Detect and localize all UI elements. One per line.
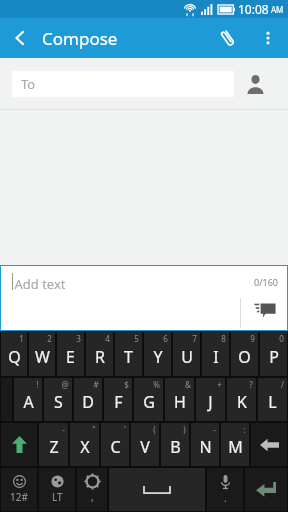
staticText: 9 bbox=[250, 333, 255, 344]
staticText: T bbox=[124, 346, 133, 368]
button[interactable]: 12# bbox=[1, 468, 37, 511]
button[interactable]: More options bbox=[248, 18, 288, 58]
button[interactable]: % bbox=[134, 378, 163, 421]
staticText: ? bbox=[249, 379, 253, 390]
staticText: 0/160 bbox=[254, 276, 278, 288]
staticText: 0 bbox=[279, 333, 284, 344]
button[interactable]: Send bbox=[243, 286, 287, 330]
staticText: E bbox=[66, 346, 75, 368]
staticText: ! bbox=[36, 379, 39, 390]
staticText: - bbox=[213, 424, 216, 435]
button[interactable]: ' bbox=[101, 423, 129, 466]
staticText: D bbox=[82, 391, 94, 413]
button[interactable]: ) bbox=[161, 423, 189, 466]
button[interactable]: Attach bbox=[208, 18, 248, 58]
staticText: ) bbox=[183, 424, 186, 435]
staticText: + bbox=[217, 379, 222, 390]
button[interactable]: - bbox=[191, 423, 219, 466]
staticText: W bbox=[35, 346, 50, 368]
button[interactable]: / bbox=[258, 378, 287, 421]
staticText: : bbox=[243, 424, 246, 435]
staticText: 6 bbox=[163, 333, 168, 344]
button[interactable]: 9 bbox=[231, 332, 258, 376]
button[interactable]: To bbox=[12, 71, 234, 97]
staticText: ( bbox=[153, 424, 156, 435]
staticText: / bbox=[281, 379, 284, 390]
staticText: L bbox=[268, 391, 277, 413]
staticText: 8 bbox=[221, 333, 226, 344]
button[interactable]: 5 bbox=[115, 332, 142, 376]
button[interactable]: Add text bbox=[1, 266, 287, 330]
button[interactable]: 1 bbox=[1, 332, 27, 376]
staticText: R bbox=[95, 346, 105, 368]
staticText: To bbox=[21, 75, 36, 93]
button[interactable]: Enter bbox=[245, 468, 287, 511]
button[interactable]: : bbox=[221, 423, 249, 466]
staticText: G bbox=[143, 391, 155, 413]
button[interactable]: # bbox=[74, 378, 102, 421]
staticText: % bbox=[153, 379, 160, 390]
staticText: - bbox=[62, 424, 65, 435]
staticText: . bbox=[224, 491, 227, 505]
staticText: P bbox=[269, 346, 279, 368]
button[interactable]: & bbox=[165, 378, 194, 421]
staticText: # bbox=[93, 379, 99, 390]
button[interactable]: 6 bbox=[144, 332, 171, 376]
button[interactable]: - bbox=[39, 423, 68, 466]
button[interactable]: Backspace bbox=[251, 423, 287, 466]
staticText: Y bbox=[153, 346, 163, 368]
staticText: V bbox=[140, 436, 150, 458]
staticText: M bbox=[228, 436, 243, 458]
button[interactable]: 8 bbox=[202, 332, 229, 376]
staticText: A bbox=[23, 391, 34, 413]
button[interactable]: LT bbox=[39, 468, 75, 511]
staticText: AM bbox=[271, 4, 284, 15]
staticText: LT bbox=[52, 490, 63, 504]
button[interactable]: , bbox=[77, 468, 107, 511]
button[interactable]: $ bbox=[104, 378, 132, 421]
staticText: O bbox=[238, 346, 251, 368]
button[interactable]: . bbox=[207, 468, 243, 511]
button[interactable]: Back bbox=[0, 18, 40, 58]
staticText: $ bbox=[124, 379, 129, 390]
staticText: F bbox=[114, 391, 123, 413]
staticText: X bbox=[80, 436, 90, 458]
staticText: 4 bbox=[105, 333, 110, 344]
staticText: " bbox=[92, 424, 96, 435]
staticText: H bbox=[174, 391, 186, 413]
staticText: N bbox=[199, 436, 212, 458]
staticText: 10:08 bbox=[238, 1, 269, 17]
staticText: ' bbox=[124, 424, 126, 435]
button[interactable]: 4 bbox=[86, 332, 113, 376]
button[interactable]: 7 bbox=[173, 332, 200, 376]
staticText: J bbox=[208, 391, 213, 413]
staticText: I bbox=[213, 346, 219, 368]
staticText: 5 bbox=[134, 333, 139, 344]
staticText: @ bbox=[61, 379, 69, 390]
staticText: Z bbox=[49, 436, 59, 458]
button[interactable]: @ bbox=[44, 378, 72, 421]
staticText: S bbox=[54, 391, 63, 413]
staticText: Add text bbox=[14, 275, 66, 293]
staticText: 1 bbox=[19, 333, 24, 344]
button[interactable]: ! bbox=[14, 378, 42, 421]
button[interactable]: Pick contact bbox=[234, 64, 276, 104]
staticText: U bbox=[181, 346, 193, 368]
button[interactable]: " bbox=[70, 423, 99, 466]
button[interactable]: 2 bbox=[29, 332, 55, 376]
staticText: C bbox=[110, 436, 121, 458]
button[interactable]: + bbox=[196, 378, 225, 421]
button[interactable]: ? bbox=[227, 378, 256, 421]
staticText: B bbox=[170, 436, 181, 458]
button[interactable]: ( bbox=[131, 423, 159, 466]
button[interactable]: 3 bbox=[57, 332, 84, 376]
staticText: 2 bbox=[47, 333, 52, 344]
button[interactable]: Shift bbox=[1, 423, 37, 466]
staticText: 7 bbox=[192, 333, 197, 344]
staticText: K bbox=[237, 391, 247, 413]
button[interactable]: Space bbox=[109, 468, 205, 511]
button[interactable]: 0 bbox=[260, 332, 287, 376]
staticText: Compose bbox=[42, 27, 118, 50]
staticText: Q bbox=[8, 346, 21, 368]
